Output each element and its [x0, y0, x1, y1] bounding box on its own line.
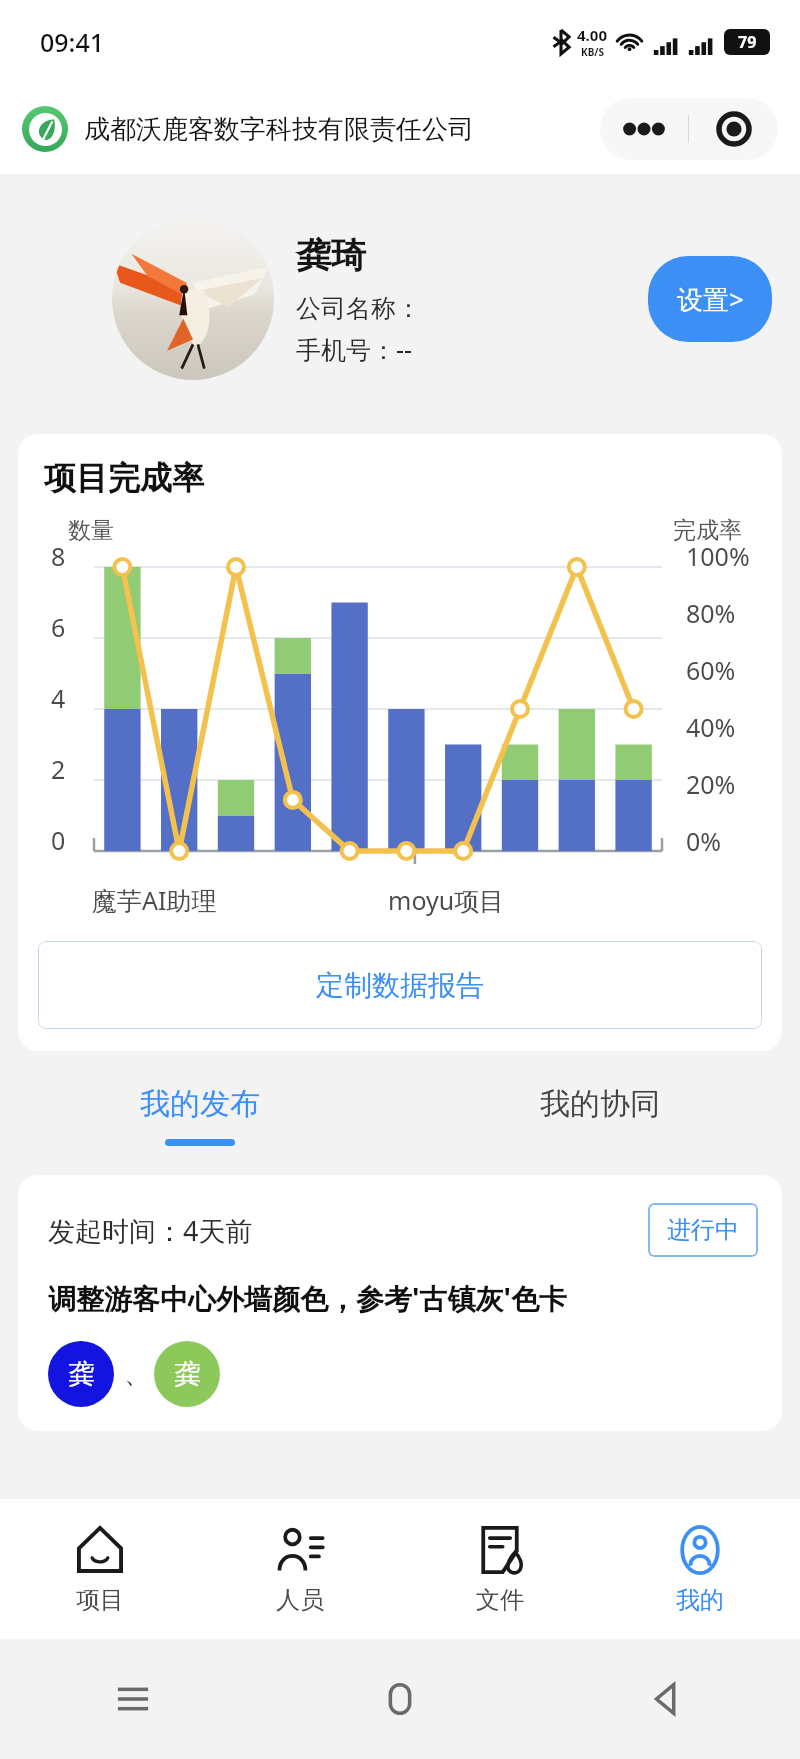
staticText: 数量: [68, 516, 114, 545]
other: Home: [379, 1678, 421, 1720]
other: Recent apps: [112, 1678, 154, 1720]
staticText: 20%: [686, 767, 736, 801]
button[interactable]: 设置>: [648, 256, 772, 342]
button[interactable]: 我的: [600, 1499, 800, 1639]
staticText: 79: [738, 31, 757, 53]
staticText: 、: [124, 1358, 150, 1391]
staticText: 2: [51, 752, 66, 786]
staticText: 定制数据报告: [316, 968, 484, 1003]
button[interactable]: 人员: [200, 1499, 400, 1639]
staticText: 项目: [76, 1585, 124, 1615]
button[interactable]: 项目: [0, 1499, 200, 1639]
staticText: 0: [51, 823, 66, 857]
staticText: 09:41: [40, 25, 105, 59]
button[interactable]: Profile photo: [112, 218, 274, 380]
staticText: 4.00: [577, 25, 607, 45]
staticText: 完成率: [673, 516, 742, 545]
staticText: 60%: [686, 653, 736, 687]
staticText: 100%: [686, 539, 750, 573]
button[interactable]: 定制数据报告: [38, 941, 762, 1029]
staticText: 人员: [276, 1585, 324, 1615]
staticText: 进行中: [667, 1215, 739, 1245]
staticText: 我的发布: [140, 1085, 260, 1123]
staticText: 公司名称：: [296, 293, 421, 324]
staticText: 魔芋AI助理: [92, 883, 217, 917]
button[interactable]: 我的协同: [400, 1065, 800, 1165]
staticText: 龚: [174, 1357, 201, 1391]
staticText: 我的: [676, 1585, 724, 1615]
staticText: moyu项目: [388, 883, 505, 917]
staticText: 项目完成率: [44, 458, 204, 498]
staticText: 文件: [476, 1585, 524, 1615]
staticText: 调整游客中心外墙颜色，参考'古镇灰'色卡: [48, 1279, 567, 1317]
button[interactable]: 我的发布: [0, 1065, 400, 1165]
staticText: 80%: [686, 596, 736, 630]
staticText: 8: [51, 539, 66, 573]
other: More options: [600, 98, 688, 160]
staticText: 发起时间：4天前: [48, 1212, 253, 1249]
button[interactable]: 文件: [400, 1499, 600, 1639]
staticText: 龚琦: [296, 233, 366, 277]
button[interactable]: More options: [600, 98, 778, 160]
staticText: 手机号：--: [296, 332, 413, 366]
staticText: KB/S: [581, 45, 604, 59]
staticText: 6: [51, 610, 66, 644]
staticText: 40%: [686, 710, 736, 744]
other: Back: [646, 1678, 688, 1720]
staticText: 设置>: [677, 281, 744, 317]
staticText: 成都沃鹿客数字科技有限责任公司: [84, 113, 474, 146]
other: Close mini program: [689, 98, 778, 160]
staticText: 0%: [686, 824, 722, 858]
button[interactable]: 发起时间：4天前: [18, 1175, 782, 1431]
staticText: 4: [51, 681, 66, 715]
staticText: 龚: [68, 1357, 95, 1391]
staticText: 我的协同: [540, 1085, 660, 1123]
